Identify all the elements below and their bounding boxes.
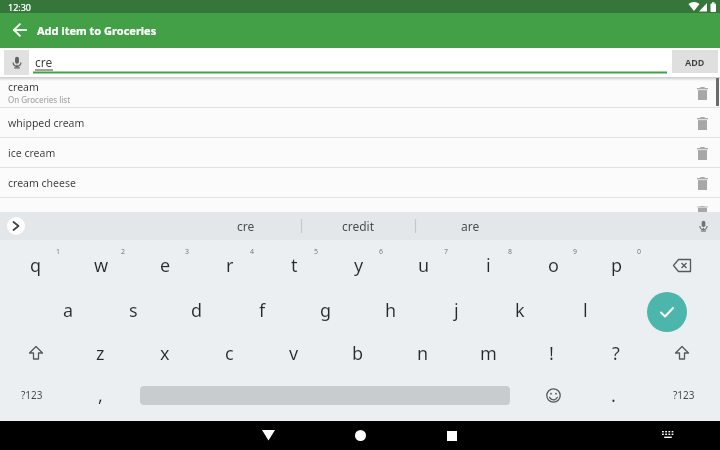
staticText: ?123 (21, 388, 43, 402)
staticText: w (94, 253, 109, 278)
button[interactable]: ice cream (0, 138, 720, 168)
button[interactable]: p (587, 243, 647, 287)
staticText: d (191, 298, 203, 323)
staticText: 2 (121, 247, 126, 257)
button[interactable]: a (38, 288, 98, 332)
button[interactable] (6, 16, 34, 44)
staticText: n (417, 341, 429, 366)
staticText: . (611, 383, 616, 408)
button[interactable] (694, 85, 710, 101)
button[interactable] (647, 292, 687, 332)
button[interactable]: s (103, 288, 163, 332)
button[interactable]: x (135, 331, 195, 375)
button[interactable]: credit (303, 212, 413, 240)
button[interactable]: i (458, 243, 518, 287)
button[interactable]: v (264, 331, 324, 375)
staticText: r (226, 253, 234, 278)
button[interactable]: cre (191, 212, 301, 240)
staticText: v (289, 341, 299, 366)
staticText: 7 (444, 247, 449, 257)
button[interactable] (7, 217, 25, 235)
button[interactable]: ? (586, 331, 646, 375)
button[interactable]: f (232, 288, 292, 332)
button[interactable]: j (426, 288, 486, 332)
button[interactable]: w (71, 243, 131, 287)
staticText: cream (8, 80, 39, 94)
button[interactable]: z (70, 331, 130, 375)
button[interactable]: are (415, 212, 525, 240)
staticText: x (160, 341, 170, 366)
button[interactable] (654, 421, 682, 450)
staticText: h (385, 298, 397, 323)
button[interactable]: b (328, 331, 388, 375)
button[interactable] (531, 373, 575, 417)
button[interactable]: ?123 (654, 373, 714, 417)
button[interactable]: n (393, 331, 453, 375)
staticText: i (486, 253, 491, 278)
button[interactable] (694, 217, 712, 235)
button[interactable]: k (490, 288, 550, 332)
staticText: s (129, 298, 138, 323)
button[interactable]: y (329, 243, 389, 287)
staticText: 8 (508, 247, 513, 257)
button[interactable]: q (6, 243, 66, 287)
button[interactable] (694, 175, 710, 191)
staticText: 4 (250, 247, 255, 257)
staticText: p (611, 253, 623, 278)
button[interactable]: l (555, 288, 615, 332)
staticText: 6 (379, 247, 384, 257)
button[interactable]: h (361, 288, 421, 332)
button[interactable]: ADD (672, 50, 718, 73)
button[interactable]: whipped cream (0, 108, 720, 138)
staticText: ? (612, 341, 620, 366)
button[interactable]: m (458, 331, 518, 375)
button[interactable]: cream cheese (0, 168, 720, 198)
staticText: j (454, 298, 459, 323)
button[interactable]: ! (521, 331, 581, 375)
staticText: 3 (185, 247, 190, 257)
staticText: o (548, 253, 559, 278)
staticText: y (354, 253, 364, 278)
staticText: 1 (56, 247, 61, 257)
button[interactable] (694, 115, 710, 131)
staticText: u (418, 253, 430, 278)
button[interactable]: . (583, 373, 643, 417)
staticText: ! (549, 341, 554, 366)
button[interactable]: u (394, 243, 454, 287)
button[interactable]: o (523, 243, 583, 287)
button[interactable] (652, 331, 712, 375)
staticText: e (160, 253, 171, 278)
staticText: 5 (314, 247, 319, 257)
button[interactable]: cream (0, 77, 720, 108)
button[interactable] (346, 421, 374, 450)
staticText: ice cream (8, 146, 56, 160)
button[interactable]: c (199, 331, 259, 375)
staticText: On Groceries list (8, 94, 71, 105)
button[interactable]: t (264, 243, 324, 287)
staticText: Add item to Groceries (37, 23, 157, 38)
button[interactable] (652, 243, 712, 287)
staticText: f (259, 298, 266, 323)
staticText: m (480, 341, 497, 366)
staticText: 9 (573, 247, 578, 257)
button[interactable]: d (167, 288, 227, 332)
staticText: credit (342, 218, 375, 234)
staticText: cream cheese (8, 176, 76, 190)
button[interactable] (6, 331, 66, 375)
button[interactable] (254, 421, 282, 450)
staticText: cre (237, 218, 255, 234)
button[interactable]: r (200, 243, 260, 287)
staticText: , (98, 383, 103, 408)
button[interactable]: , (70, 373, 130, 417)
staticText: are (461, 218, 480, 234)
button[interactable]: e (135, 243, 195, 287)
staticText: 12:30 (8, 1, 32, 13)
button[interactable]: ?123 (2, 373, 62, 417)
button[interactable] (438, 421, 466, 450)
staticText: cre (35, 54, 53, 70)
button[interactable] (4, 50, 29, 75)
staticText: a (63, 298, 74, 323)
button[interactable]: g (296, 288, 356, 332)
button[interactable] (694, 145, 710, 161)
